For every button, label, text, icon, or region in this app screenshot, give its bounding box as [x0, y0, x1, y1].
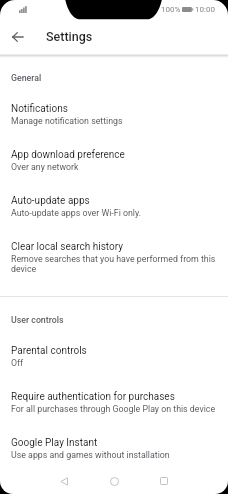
staticText: Parental controls [11, 345, 87, 357]
staticText: Clear local search history [11, 241, 123, 253]
staticText: Off [11, 358, 24, 368]
button[interactable]: Notifications [0, 103, 228, 149]
staticText: For all purchases through Google Play on… [11, 404, 216, 414]
staticText: 10:00 [195, 5, 215, 14]
staticText: User controls [11, 315, 64, 325]
staticText: Over any network [11, 162, 79, 172]
button[interactable]: Auto-update apps [0, 195, 228, 241]
button[interactable]: Home [104, 471, 124, 491]
button[interactable]: App download preference [0, 149, 228, 195]
staticText: Auto-update apps [11, 195, 90, 207]
staticText: Google Play Instant [11, 437, 98, 449]
button[interactable]: Back [6, 25, 29, 48]
staticText: Require authentication for purchases [11, 391, 175, 403]
button[interactable]: Recent apps [154, 471, 174, 491]
button[interactable]: Clear local search history [0, 241, 228, 296]
button[interactable]: Google Play Instant [0, 437, 228, 467]
staticText: Manage notification settings [11, 116, 123, 126]
staticText: Use apps and games without installation [11, 450, 170, 460]
button[interactable]: Back [54, 471, 74, 491]
staticText: Auto-update apps over Wi-Fi only. [11, 208, 142, 218]
staticText: Notifications [11, 103, 68, 115]
staticText: Remove searches that you have performed … [11, 254, 216, 274]
staticText: 100% [161, 5, 181, 14]
staticText: App download preference [11, 149, 125, 161]
button[interactable]: Parental controls [0, 345, 228, 391]
staticText: General [11, 73, 42, 83]
button[interactable]: Require authentication for purchases [0, 391, 228, 437]
staticText: Settings [46, 29, 93, 44]
